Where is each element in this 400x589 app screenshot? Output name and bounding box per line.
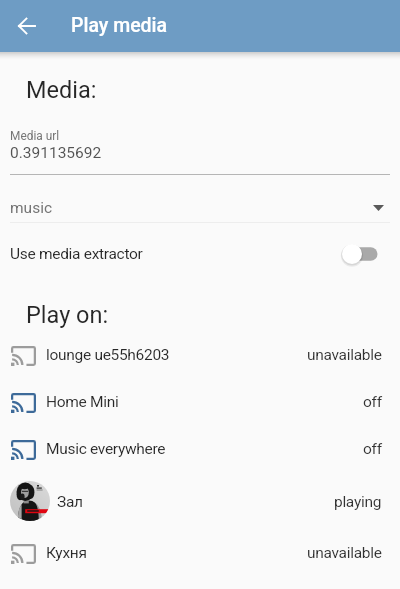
staticText: Home Mini xyxy=(46,393,119,411)
staticText: Зал xyxy=(57,493,83,511)
staticText: off xyxy=(363,393,382,411)
button[interactable]: Navigate up xyxy=(8,8,44,44)
staticText: playing xyxy=(334,493,382,511)
staticText: Play media xyxy=(71,14,168,37)
staticText: Кухня xyxy=(46,544,87,562)
staticText: unavailable xyxy=(307,346,382,364)
staticText: Media url xyxy=(10,129,60,143)
button[interactable]: Music everywhere xyxy=(0,426,400,473)
button[interactable]: lounge ue55h6203 xyxy=(0,332,400,379)
staticText: lounge ue55h6203 xyxy=(46,346,170,364)
staticText: unavailable xyxy=(307,544,382,562)
button[interactable]: Зал xyxy=(0,473,400,530)
staticText: Media: xyxy=(26,76,97,104)
staticText: 0.391135692 xyxy=(10,144,102,162)
button[interactable]: Media type: music xyxy=(0,193,400,222)
button[interactable]: Use media extractor xyxy=(340,241,385,267)
button[interactable]: Home Mini xyxy=(0,379,400,426)
staticText: Use media extractor xyxy=(10,245,143,263)
button[interactable]: Кухня xyxy=(0,530,400,577)
staticText: Music everywhere xyxy=(46,440,166,458)
staticText: music xyxy=(10,199,53,217)
button[interactable]: Use media extractor xyxy=(0,236,400,272)
staticText: Play on: xyxy=(26,301,109,329)
staticText: off xyxy=(363,440,382,458)
